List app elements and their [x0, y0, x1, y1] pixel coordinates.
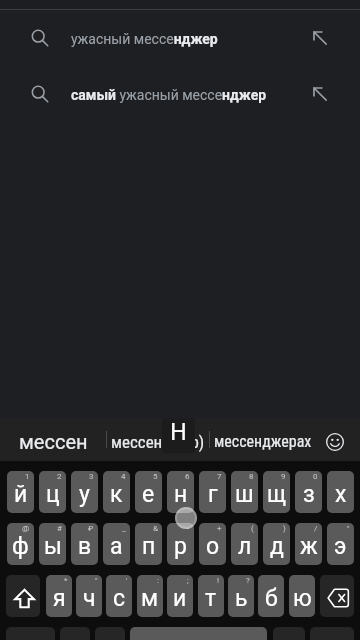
staticText: н	[174, 481, 188, 508]
button[interactable]: р	[167, 523, 194, 565]
staticText: м	[141, 585, 159, 612]
staticText: ?	[246, 576, 250, 585]
button[interactable]: в	[71, 523, 98, 565]
staticText: 2	[57, 472, 62, 481]
staticText: /	[314, 524, 318, 533]
button[interactable]: самый ужасный мессенджер	[0, 66, 360, 122]
button[interactable]: к	[103, 471, 130, 513]
staticText: -	[187, 524, 190, 533]
button[interactable]: ,	[60, 627, 90, 640]
staticText: й	[14, 481, 28, 508]
staticText: э	[334, 533, 347, 560]
button[interactable]: Insert suggestion into search box	[300, 10, 348, 66]
button[interactable]: ы	[39, 523, 66, 565]
staticText: мессен	[19, 430, 88, 453]
button[interactable]: е	[135, 471, 162, 513]
button[interactable]: п	[135, 523, 162, 565]
button[interactable]: ь	[228, 575, 254, 617]
button[interactable]: х	[327, 471, 354, 513]
staticText: и	[173, 585, 187, 612]
staticText: 5	[153, 472, 158, 481]
button[interactable]: !?	[273, 627, 305, 640]
staticText: "	[95, 576, 98, 585]
button[interactable]: н	[167, 471, 194, 513]
button[interactable]: Insert suggestion into search box	[300, 66, 348, 122]
staticText: (	[251, 524, 254, 533]
button[interactable]: ш	[231, 471, 258, 513]
button[interactable]: у	[71, 471, 98, 513]
staticText: в	[78, 533, 92, 560]
staticText: ужасный мессенджер	[71, 31, 218, 47]
staticText: ц	[46, 481, 60, 508]
staticText: у	[79, 481, 90, 508]
button[interactable]: о	[199, 523, 226, 565]
staticText: щ	[267, 481, 287, 508]
staticText: 8	[249, 472, 254, 481]
staticText: _	[122, 524, 126, 533]
button[interactable]: ю	[289, 575, 315, 617]
staticText: 4	[121, 472, 126, 481]
staticText: !	[217, 576, 220, 585]
staticText: я	[53, 585, 66, 612]
staticText: р	[174, 533, 187, 560]
staticText: '	[126, 576, 128, 585]
staticText: 9	[281, 472, 286, 481]
button[interactable]: м	[137, 575, 163, 617]
button[interactable]: мессен	[0, 418, 106, 461]
staticText: е	[142, 481, 155, 508]
staticText: ф	[12, 533, 29, 560]
button[interactable]: Backspace	[320, 575, 354, 617]
button[interactable]: Space	[130, 627, 267, 640]
button[interactable]: л	[231, 523, 258, 565]
staticText: ж	[300, 533, 318, 560]
staticText: п	[142, 533, 156, 560]
button[interactable]: ф	[7, 523, 34, 565]
button[interactable]: й	[7, 471, 34, 513]
button[interactable]: а	[103, 523, 130, 565]
staticText: +	[217, 524, 222, 533]
button[interactable]: э	[327, 523, 354, 565]
staticText: мессенджер)	[111, 432, 205, 452]
staticText: 6	[185, 472, 190, 481]
button[interactable]: г	[199, 471, 226, 513]
staticText: мессенджерах	[214, 432, 312, 451]
staticText: ч	[83, 585, 96, 612]
button[interactable]: я	[46, 575, 72, 617]
staticText: о	[206, 533, 220, 560]
button[interactable]: и	[167, 575, 193, 617]
button[interactable]: ц	[39, 471, 66, 513]
staticText: ю	[293, 585, 312, 612]
staticText: ;	[187, 576, 189, 585]
staticText: ы	[44, 533, 62, 560]
button[interactable]: д	[263, 523, 290, 565]
button[interactable]: мессенджер)	[106, 418, 209, 461]
button[interactable]: Voice input	[95, 627, 125, 640]
button[interactable]: ужасный мессенджер	[0, 10, 360, 66]
staticText: ь	[235, 585, 248, 612]
staticText: б	[265, 585, 278, 612]
staticText: :	[157, 576, 159, 585]
staticText: х	[335, 481, 347, 508]
button[interactable]: щ	[263, 471, 290, 513]
button[interactable]: с	[106, 575, 132, 617]
staticText: Н	[170, 419, 187, 446]
staticText: т	[205, 585, 217, 612]
staticText: @	[22, 524, 30, 533]
staticText: 7	[217, 472, 222, 481]
button[interactable]: мессенджерах	[209, 418, 317, 461]
button[interactable]: б	[258, 575, 284, 617]
button[interactable]: Enter	[310, 627, 354, 640]
button[interactable]: Shift	[6, 575, 40, 617]
button[interactable]: ж	[295, 523, 322, 565]
staticText: *	[64, 576, 68, 585]
button[interactable]: ч	[76, 575, 102, 617]
button[interactable]: з	[295, 471, 322, 513]
staticText: ш	[235, 481, 254, 508]
staticText: д	[270, 533, 284, 560]
button[interactable]: Emoji keyboard	[317, 418, 360, 461]
staticText: &	[153, 524, 158, 533]
staticText: 0	[313, 472, 318, 481]
staticText: 1	[25, 472, 30, 481]
button[interactable]: т	[198, 575, 224, 617]
